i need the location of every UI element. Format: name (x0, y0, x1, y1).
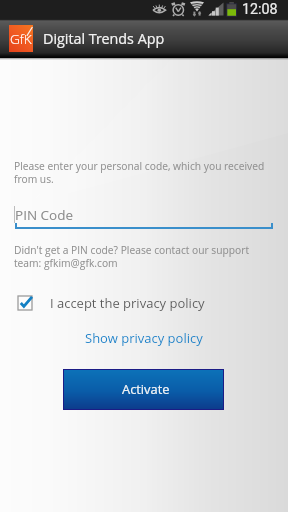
button[interactable]: Activate (64, 370, 223, 409)
staticText: 12:08 (242, 1, 278, 18)
staticText: Digital Trends App (43, 29, 165, 48)
staticText: GfK (10, 30, 32, 48)
staticText: PIN Code (15, 206, 74, 224)
button[interactable]: Show privacy policy (79, 326, 209, 350)
staticText: I accept the privacy policy (50, 294, 205, 312)
staticText: Please enter your personal code, which y… (14, 159, 282, 186)
staticText: Activate (122, 380, 170, 398)
staticText: Didn't get a PIN code? Please contact ou… (14, 243, 276, 270)
button[interactable]: I accept the privacy policy (0, 292, 288, 314)
